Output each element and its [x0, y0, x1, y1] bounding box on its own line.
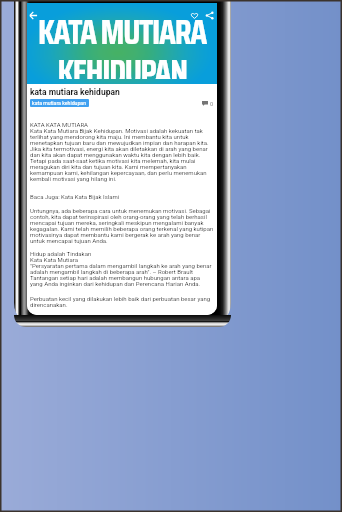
button[interactable]: Back	[28, 10, 39, 21]
staticText: KATA MUTIARA KEHIDUPAN	[27, 5, 217, 79]
button[interactable]: Favorite	[189, 10, 200, 21]
staticText: Hidup adalah Tindakan Kata Kata Mutiara …	[30, 250, 214, 288]
button[interactable]: Share	[204, 10, 215, 21]
button[interactable]: kata mutiara kehidupan	[30, 99, 89, 107]
staticText: Baca Juga: Kata Kata Bijak Islami	[30, 193, 120, 200]
staticText: Untungnya, ada beberapa cara untuk menem…	[30, 207, 214, 245]
staticText: Perbuatan kecil yang dilakukan lebih bai…	[30, 295, 214, 309]
staticText: KATA KATA MUTIARA Kata Kata Mutiara Bija…	[30, 121, 214, 183]
staticText: kata mutiara kehidupan	[30, 87, 120, 97]
staticText: kata mutiara kehidupan	[32, 100, 87, 106]
staticText: 0	[210, 100, 214, 107]
